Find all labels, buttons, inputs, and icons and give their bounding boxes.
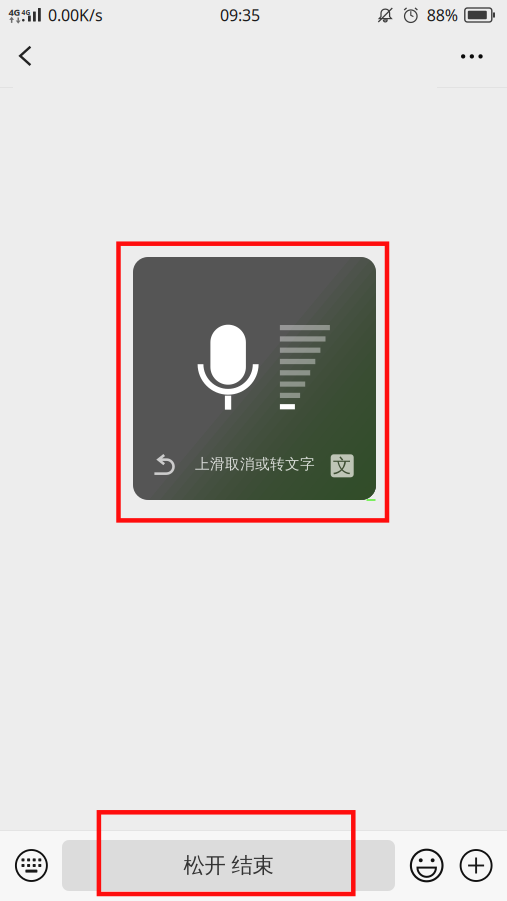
staticText: 09:35	[220, 4, 260, 26]
staticText: 松开 结束	[183, 852, 273, 879]
button[interactable]: More	[439, 30, 507, 86]
button[interactable]: More options	[460, 849, 492, 881]
staticText: 文	[333, 454, 352, 477]
staticText: 4G	[21, 8, 30, 17]
staticText: 4G	[8, 6, 20, 18]
staticText: 0.00K/s	[44, 4, 103, 26]
staticText: 上滑取消或转文字	[195, 455, 315, 473]
button[interactable]: Back	[0, 30, 53, 87]
button[interactable]: Keyboard	[0, 831, 62, 901]
button[interactable]: Emoji	[411, 849, 443, 881]
staticText: 88%	[427, 4, 458, 26]
button[interactable]: 松开 结束	[62, 840, 395, 891]
